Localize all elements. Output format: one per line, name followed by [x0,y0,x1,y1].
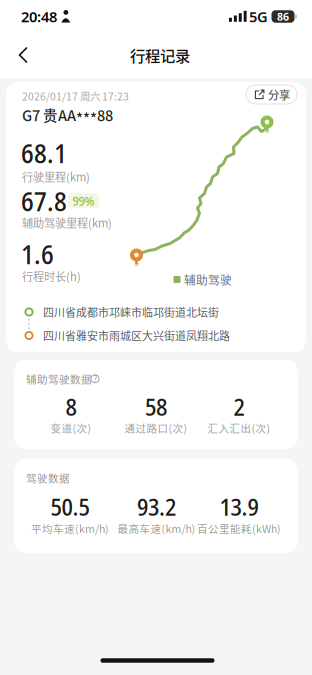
staticText: 13.9 [219,490,258,523]
staticText: 67.8 [21,183,67,219]
staticText: 变道(次) [50,420,91,436]
staticText: G7 贵AA [22,104,76,125]
staticText: 辅助驾驶数据 [26,371,92,386]
staticText: 辅助驾驶里程(km) [22,214,112,231]
staticText: 汇入汇出(次) [207,420,270,436]
staticText: 平均车速(km/h) [31,521,109,536]
staticText: 99% [72,191,94,210]
staticText: 58 [145,390,167,423]
staticText: 88 [97,104,113,125]
staticText: 50.5 [50,490,89,523]
staticText: 行程记录 [130,44,190,66]
staticText: 四川省雅安市雨城区大兴街道凤翔北路 [43,328,230,343]
staticText: 最高车速(km/h) [117,521,195,536]
staticText: *** [76,107,97,128]
button[interactable]: 分享 [246,85,297,104]
staticText: 68.1 [21,135,67,171]
staticText: 93.2 [137,490,176,523]
staticText: 86 [277,9,289,24]
staticText: 辅助驾驶 [184,271,232,288]
staticText: 20:48 [21,7,57,26]
staticText: ? [93,373,96,384]
staticText: 驾驶数据 [26,470,70,486]
staticText: 四川省成都市邛崃市临邛街道北坛街 [43,304,219,320]
staticText: 2026/01/17 周六 17:23 [22,88,129,104]
button[interactable]: 说明 [90,374,100,384]
staticText: 5G [249,7,268,26]
staticText: 分享 [268,86,290,103]
staticText: 1.6 [21,236,54,272]
button[interactable]: Back [14,45,34,65]
staticText: 8 [65,390,76,423]
staticText: 百公里能耗(kWh) [197,521,281,536]
staticText: 行驶里程(km) [22,168,90,185]
staticText: 行程时长(h) [22,268,81,284]
staticText: 通过路口(次) [124,420,187,436]
staticText: 2 [233,390,244,423]
